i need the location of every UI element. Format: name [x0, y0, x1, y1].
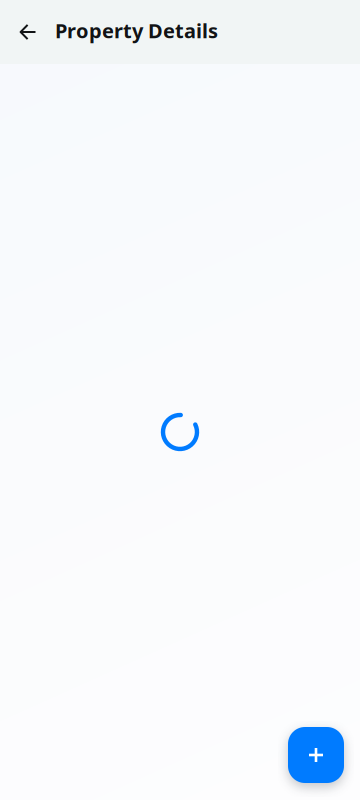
button[interactable]: Add — [288, 727, 344, 783]
staticText: Property Details — [55, 17, 218, 44]
button[interactable]: Back — [10, 0, 46, 64]
